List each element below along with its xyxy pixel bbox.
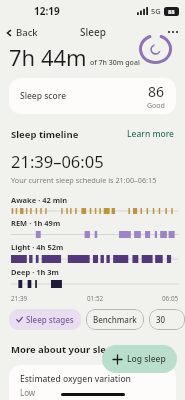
staticText: 21:39 (11, 294, 28, 303)
staticText: REM · 1h 49m (11, 218, 61, 228)
staticText: Sleep (80, 25, 106, 39)
staticText: 5G (151, 6, 161, 16)
staticText: Your current sleep schedule is 21:00–06:… (11, 175, 157, 185)
staticText: Sleep score (20, 90, 67, 102)
staticText: Good (147, 101, 165, 111)
button[interactable]: Sleep score (9, 78, 176, 114)
staticText: 21:39–06:05 (11, 150, 104, 172)
staticText: 06:05 (162, 294, 179, 303)
button[interactable]: Learn more (125, 126, 176, 142)
button[interactable]: 30 day ave (149, 309, 185, 330)
staticText: Awake · 42 min (11, 195, 68, 205)
staticText: Back (16, 26, 38, 39)
staticText: Benchmark (93, 314, 137, 325)
button[interactable]: More options (161, 26, 185, 38)
staticText: of 7h 30m goal (90, 58, 140, 68)
staticText: Light · 4h 52m (11, 242, 64, 252)
staticText: Log sleep (127, 353, 166, 365)
staticText: 7h 44m (9, 42, 87, 72)
staticText: Low (20, 387, 36, 398)
staticText: 12:19 (34, 4, 60, 18)
staticText: More about your sleep (11, 343, 118, 356)
button[interactable]: Benchmark (86, 309, 144, 330)
staticText: Sleep stages (26, 314, 74, 325)
staticText: 86 (148, 82, 165, 101)
staticText: 88 (168, 8, 175, 16)
staticText: Learn more (127, 128, 174, 140)
button[interactable]: Sleep stages (9, 309, 81, 330)
staticText: Deep · 1h 3m (11, 267, 59, 277)
button[interactable]: Log sleep (102, 345, 177, 373)
button[interactable]: Estimated oxygen variation (9, 365, 176, 400)
staticText: Sleep timeline (11, 128, 79, 141)
staticText: 01:52 (87, 294, 104, 303)
button[interactable]: Back (0, 23, 44, 42)
staticText: Estimated oxygen variation (20, 373, 131, 385)
staticText: 30 day ave (156, 314, 178, 325)
